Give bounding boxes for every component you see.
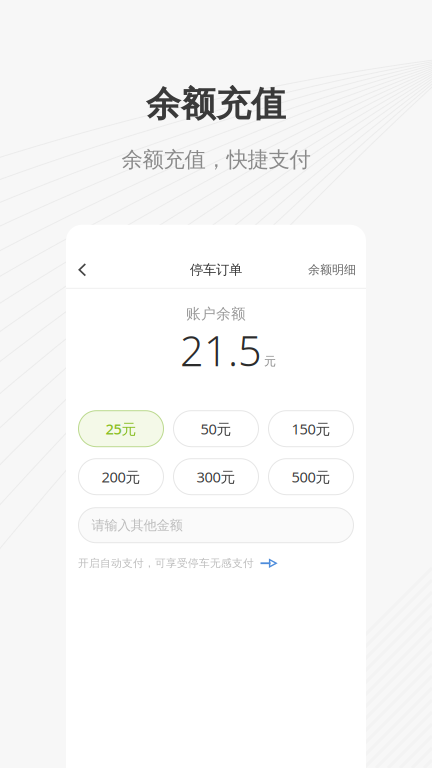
staticText: 元 [264, 354, 276, 369]
staticText: 余额充值 [146, 83, 286, 126]
staticText: 开启自动支付，可享受停车无感支付 [78, 557, 254, 570]
staticText: 21.5 [180, 323, 262, 378]
staticText: 50元 [200, 419, 231, 438]
staticText: 300元 [196, 467, 235, 486]
staticText: 停车订单 [190, 262, 242, 278]
button[interactable]: 150元 [268, 411, 353, 447]
staticText: 500元 [291, 467, 330, 486]
staticText: 余额充值，快捷支付 [121, 147, 310, 173]
staticText: 25元 [105, 419, 136, 438]
button[interactable]: 300元 [173, 459, 258, 495]
button[interactable]: 请输入其他金额 [78, 508, 353, 543]
button[interactable]: Back [78, 252, 104, 288]
staticText: 200元 [101, 467, 140, 486]
button[interactable]: 25元 [78, 411, 163, 447]
button[interactable]: 开启自动支付，可享受停车无感支付 [66, 557, 366, 570]
button[interactable]: 200元 [78, 459, 163, 495]
button[interactable]: 余额明细 [308, 252, 356, 288]
staticText: 150元 [291, 419, 330, 438]
button[interactable]: 50元 [173, 411, 258, 447]
staticText: 余额明细 [308, 262, 356, 277]
staticText: 账户余额 [186, 305, 246, 323]
staticText: 请输入其他金额 [91, 517, 182, 533]
button[interactable]: 500元 [268, 459, 353, 495]
